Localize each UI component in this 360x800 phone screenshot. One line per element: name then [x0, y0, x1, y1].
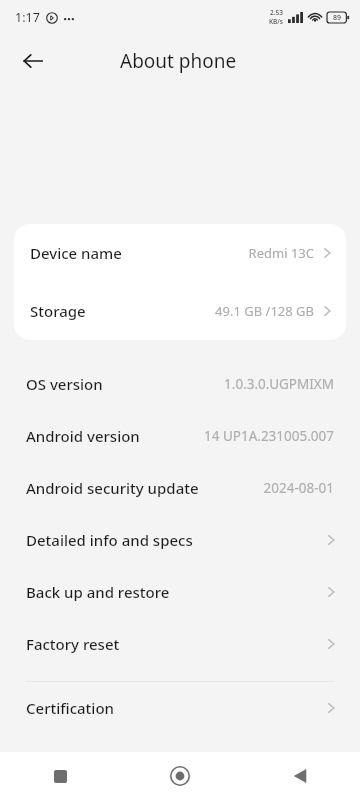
staticText: Back up and restore: [26, 582, 170, 602]
staticText: Storage: [30, 301, 86, 321]
button[interactable]: Storage: [14, 282, 346, 340]
staticText: 2024-08-01: [263, 479, 334, 497]
staticText: Redmi 13C: [248, 244, 314, 262]
staticText: 14 UP1A.231005.007: [203, 427, 334, 445]
button[interactable]: Certification: [0, 682, 360, 734]
staticText: OS version: [26, 374, 103, 394]
staticText: 49.1 GB /128 GB: [215, 302, 314, 320]
button[interactable]: Back: [10, 38, 56, 84]
button[interactable]: Home: [120, 752, 240, 800]
button[interactable]: Back: [240, 752, 360, 800]
staticText: About phone: [120, 48, 237, 74]
button[interactable]: Detailed info and specs: [0, 514, 360, 566]
button[interactable]: Android security update: [0, 462, 360, 514]
button[interactable]: Factory reset: [0, 618, 360, 670]
staticText: 1:17: [15, 9, 40, 26]
button[interactable]: Android version: [0, 410, 360, 462]
staticText: Detailed info and specs: [26, 530, 193, 550]
button[interactable]: Device name: [14, 224, 346, 282]
button[interactable]: Recent apps: [0, 752, 120, 800]
staticText: Factory reset: [26, 634, 120, 654]
staticText: KB/s: [269, 17, 284, 26]
button[interactable]: Back up and restore: [0, 566, 360, 618]
button[interactable]: OS version: [0, 358, 360, 410]
staticText: Device name: [30, 243, 122, 263]
staticText: 89: [333, 13, 342, 23]
staticText: 2.53: [270, 8, 283, 17]
staticText: Android security update: [26, 478, 199, 498]
staticText: Android version: [26, 426, 140, 446]
staticText: 1.0.3.0.UGPMIXM: [224, 375, 334, 393]
staticText: Certification: [26, 698, 114, 718]
